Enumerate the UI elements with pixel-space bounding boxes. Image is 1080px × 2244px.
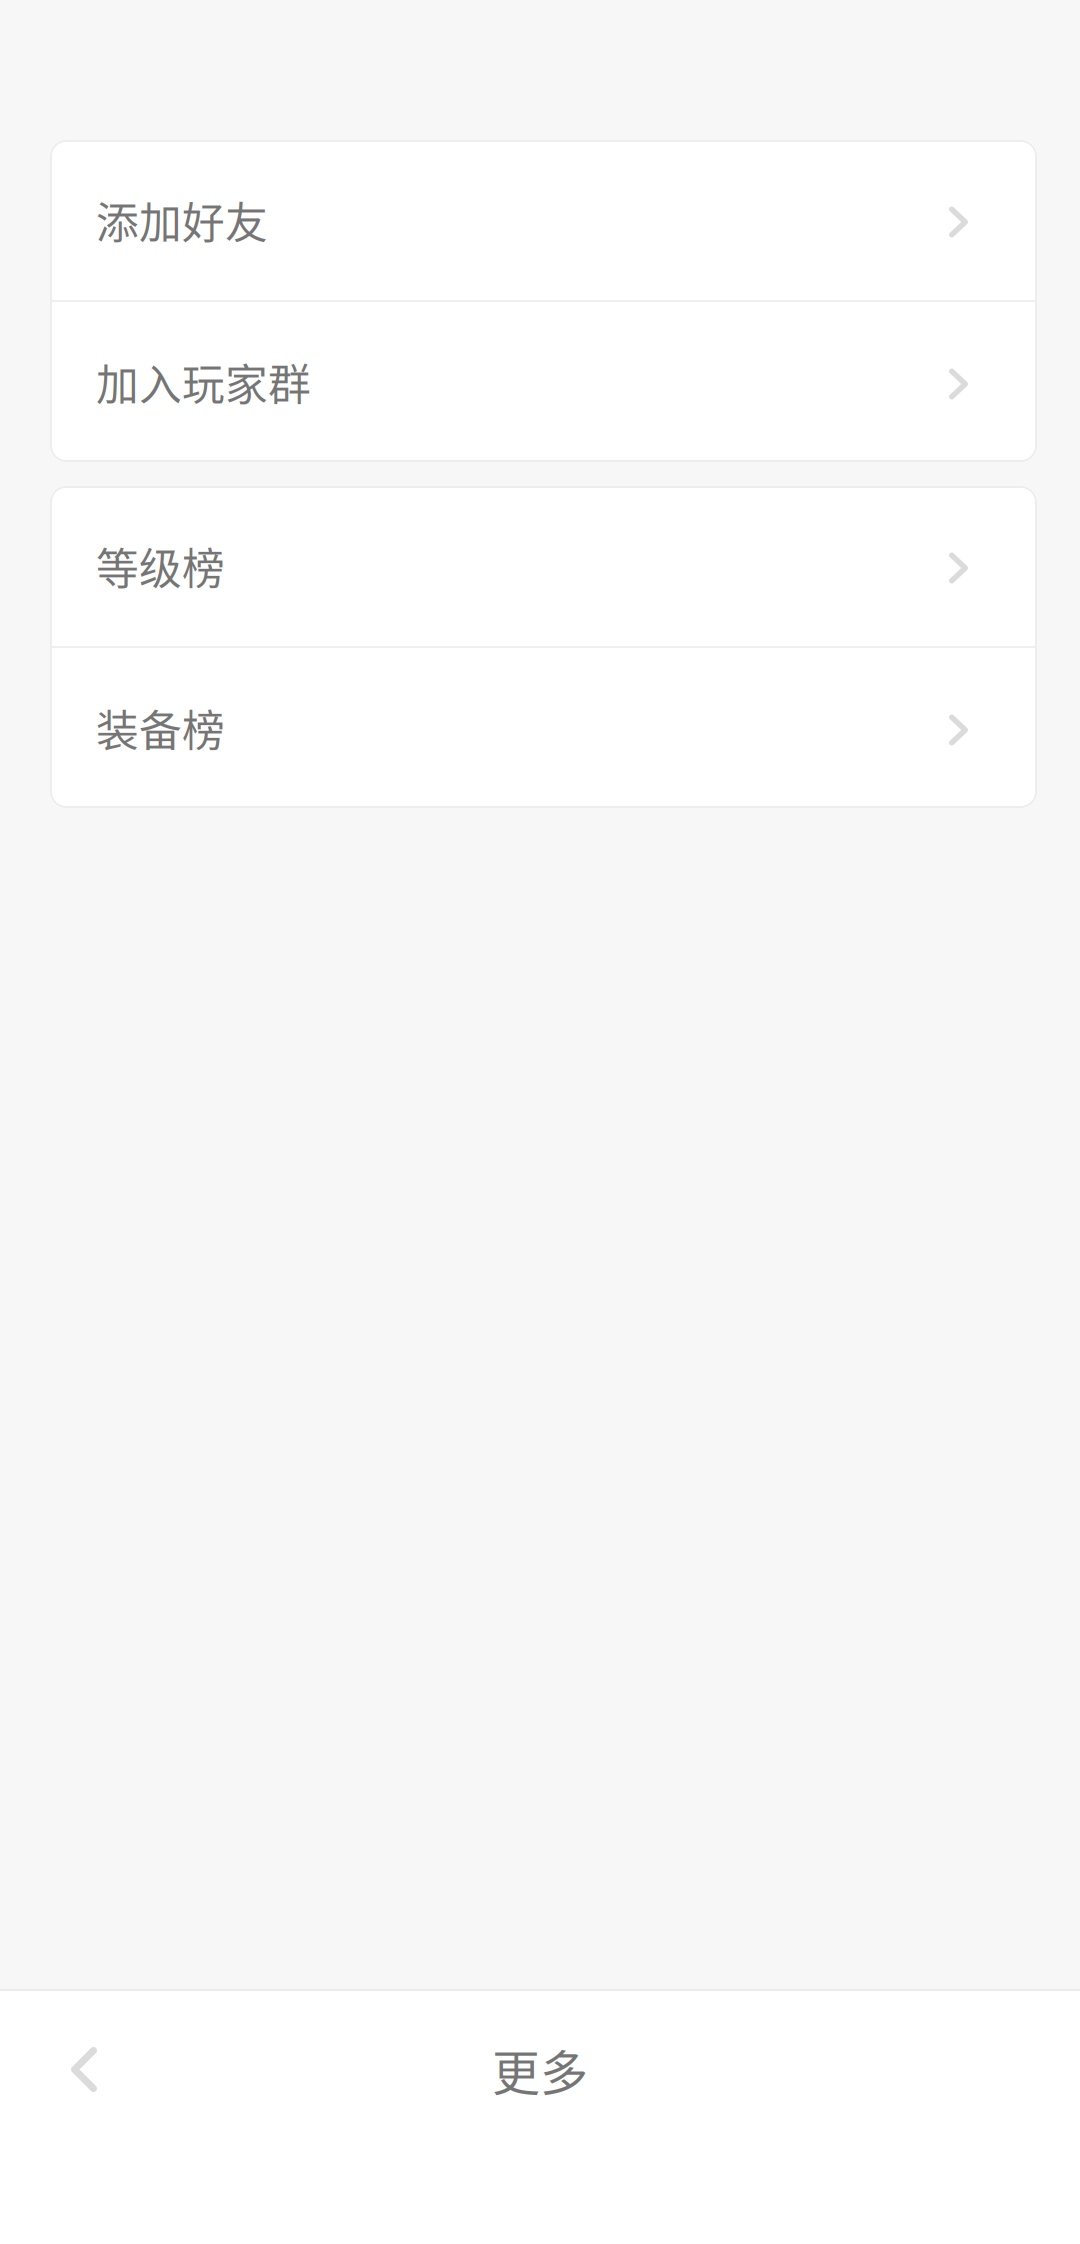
staticText: 等级榜 <box>96 535 225 597</box>
button[interactable]: 装备榜 <box>50 648 1037 808</box>
staticText: 更多 <box>492 2035 588 2104</box>
button[interactable]: 加入玩家群 <box>50 302 1037 462</box>
button[interactable]: 添加好友 <box>50 140 1037 300</box>
staticText: 装备榜 <box>96 697 225 759</box>
button[interactable]: 等级榜 <box>50 486 1037 646</box>
staticText: 添加好友 <box>96 189 268 251</box>
staticText: 加入玩家群 <box>96 351 311 413</box>
button[interactable]: Back <box>36 2021 132 2117</box>
